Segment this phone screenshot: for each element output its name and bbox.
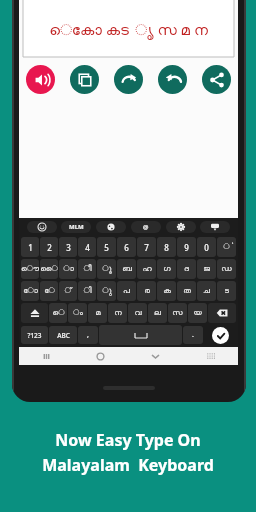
staticText: 7	[144, 242, 149, 253]
button[interactable]: ഗ	[157, 259, 176, 279]
staticText: .	[192, 330, 194, 340]
button[interactable]: ക	[157, 281, 176, 301]
staticText: ൂ	[102, 265, 112, 273]
button[interactable]: മ	[88, 303, 107, 323]
button[interactable]: ,	[78, 326, 98, 344]
staticText: ദ	[184, 265, 189, 273]
button[interactable]: MLM	[61, 221, 91, 233]
button[interactable]: ീ	[78, 259, 96, 279]
button[interactable]: Enter	[212, 327, 229, 344]
staticText: െകോ കട ൃ സ മ ന	[49, 19, 208, 39]
button[interactable]: ട	[217, 281, 236, 301]
button[interactable]: Copy	[70, 65, 99, 94]
staticText: 3	[66, 242, 71, 253]
staticText: ഗ	[163, 265, 171, 273]
staticText: ന	[114, 309, 122, 317]
button[interactable]: 2	[40, 237, 58, 257]
button[interactable]: ത	[177, 281, 196, 301]
button[interactable]: ഹ	[137, 259, 156, 279]
button[interactable]: േ	[40, 281, 58, 301]
button[interactable]: Theme	[96, 221, 126, 233]
button[interactable]: Hide keyboard	[200, 221, 230, 233]
button[interactable]: ദ	[177, 259, 196, 279]
button[interactable]: Share	[202, 65, 231, 94]
other: Home	[95, 351, 106, 362]
staticText: ീ	[83, 265, 92, 273]
button[interactable]: ൈ	[40, 259, 58, 279]
button[interactable]: ്	[59, 281, 77, 301]
button[interactable]: 0	[197, 237, 216, 257]
button[interactable]: ാ	[59, 259, 77, 279]
staticText: 1	[28, 242, 33, 253]
staticText: Now Easy Type On	[55, 429, 201, 451]
button[interactable]: െ	[49, 303, 67, 323]
button[interactable]: Backspace	[208, 303, 236, 323]
button[interactable]: 7	[137, 237, 156, 257]
button[interactable]: 1	[21, 237, 39, 257]
button[interactable]: 6	[117, 237, 136, 257]
staticText: ഹ	[142, 265, 152, 273]
button[interactable]: ൌ	[21, 259, 39, 279]
button[interactable]: 4	[78, 237, 96, 257]
staticText: മ	[95, 309, 101, 317]
button[interactable]: Redo	[114, 65, 143, 94]
staticText: ൌ	[21, 265, 39, 273]
button[interactable]: ച	[197, 281, 216, 301]
button[interactable]: 3	[59, 237, 77, 257]
button[interactable]: Speak	[26, 65, 55, 94]
button[interactable]: Shift	[21, 303, 48, 323]
staticText: ൈ	[40, 265, 58, 273]
button[interactable]: Emoji	[27, 221, 57, 233]
button[interactable]: Space	[99, 325, 182, 345]
staticText: േ	[44, 287, 55, 295]
staticText: ക	[163, 287, 171, 295]
button[interactable]: സ	[168, 303, 187, 323]
staticText: ൎ	[223, 243, 230, 251]
staticText: ട	[224, 287, 229, 295]
button[interactable]: Undo	[158, 65, 187, 94]
button[interactable]: ോ	[21, 281, 39, 301]
staticText: ു	[102, 287, 112, 295]
button[interactable]: ം	[68, 303, 87, 323]
button[interactable]: .	[183, 326, 203, 344]
button[interactable]: 8	[157, 237, 176, 257]
button[interactable]: 5	[97, 237, 116, 257]
button[interactable]: യ	[188, 303, 207, 323]
staticText: 2	[47, 242, 52, 253]
staticText: ABC	[57, 331, 70, 340]
staticText: 0	[204, 242, 209, 253]
button[interactable]: ഡ	[217, 259, 236, 279]
button[interactable]: ABC	[49, 326, 77, 344]
staticText: 5	[104, 242, 109, 253]
button[interactable]: 9	[177, 237, 196, 257]
other: Back	[150, 351, 161, 362]
staticText: ോ	[23, 287, 38, 295]
staticText: 9	[184, 242, 189, 253]
staticText: ത	[183, 287, 191, 295]
button[interactable]: ൎ	[217, 237, 236, 257]
staticText: 6	[124, 242, 129, 253]
button[interactable]: ൂ	[97, 259, 116, 279]
staticText: ച	[203, 287, 210, 295]
staticText: MLM	[69, 223, 84, 231]
button[interactable]: @	[131, 221, 161, 233]
button[interactable]: ല	[148, 303, 167, 323]
button[interactable]: ബ	[117, 259, 136, 279]
staticText: സ	[172, 309, 183, 317]
staticText: ്	[64, 287, 72, 295]
button[interactable]: ു	[97, 281, 116, 301]
staticText: ര	[144, 287, 150, 295]
button[interactable]: Settings	[166, 221, 196, 233]
staticText: Malayalam Keyboard	[42, 454, 214, 476]
button[interactable]: പ	[117, 281, 136, 301]
staticText: യ	[193, 309, 202, 317]
staticText: ം	[73, 309, 83, 317]
button[interactable]: ര	[137, 281, 156, 301]
button[interactable]: ?123	[21, 326, 48, 344]
button[interactable]: ജ	[197, 259, 216, 279]
button[interactable]: ി	[78, 281, 96, 301]
button[interactable]: ന	[108, 303, 127, 323]
button[interactable]: വ	[128, 303, 147, 323]
staticText: ,	[87, 330, 89, 340]
staticText: െ	[52, 309, 65, 317]
